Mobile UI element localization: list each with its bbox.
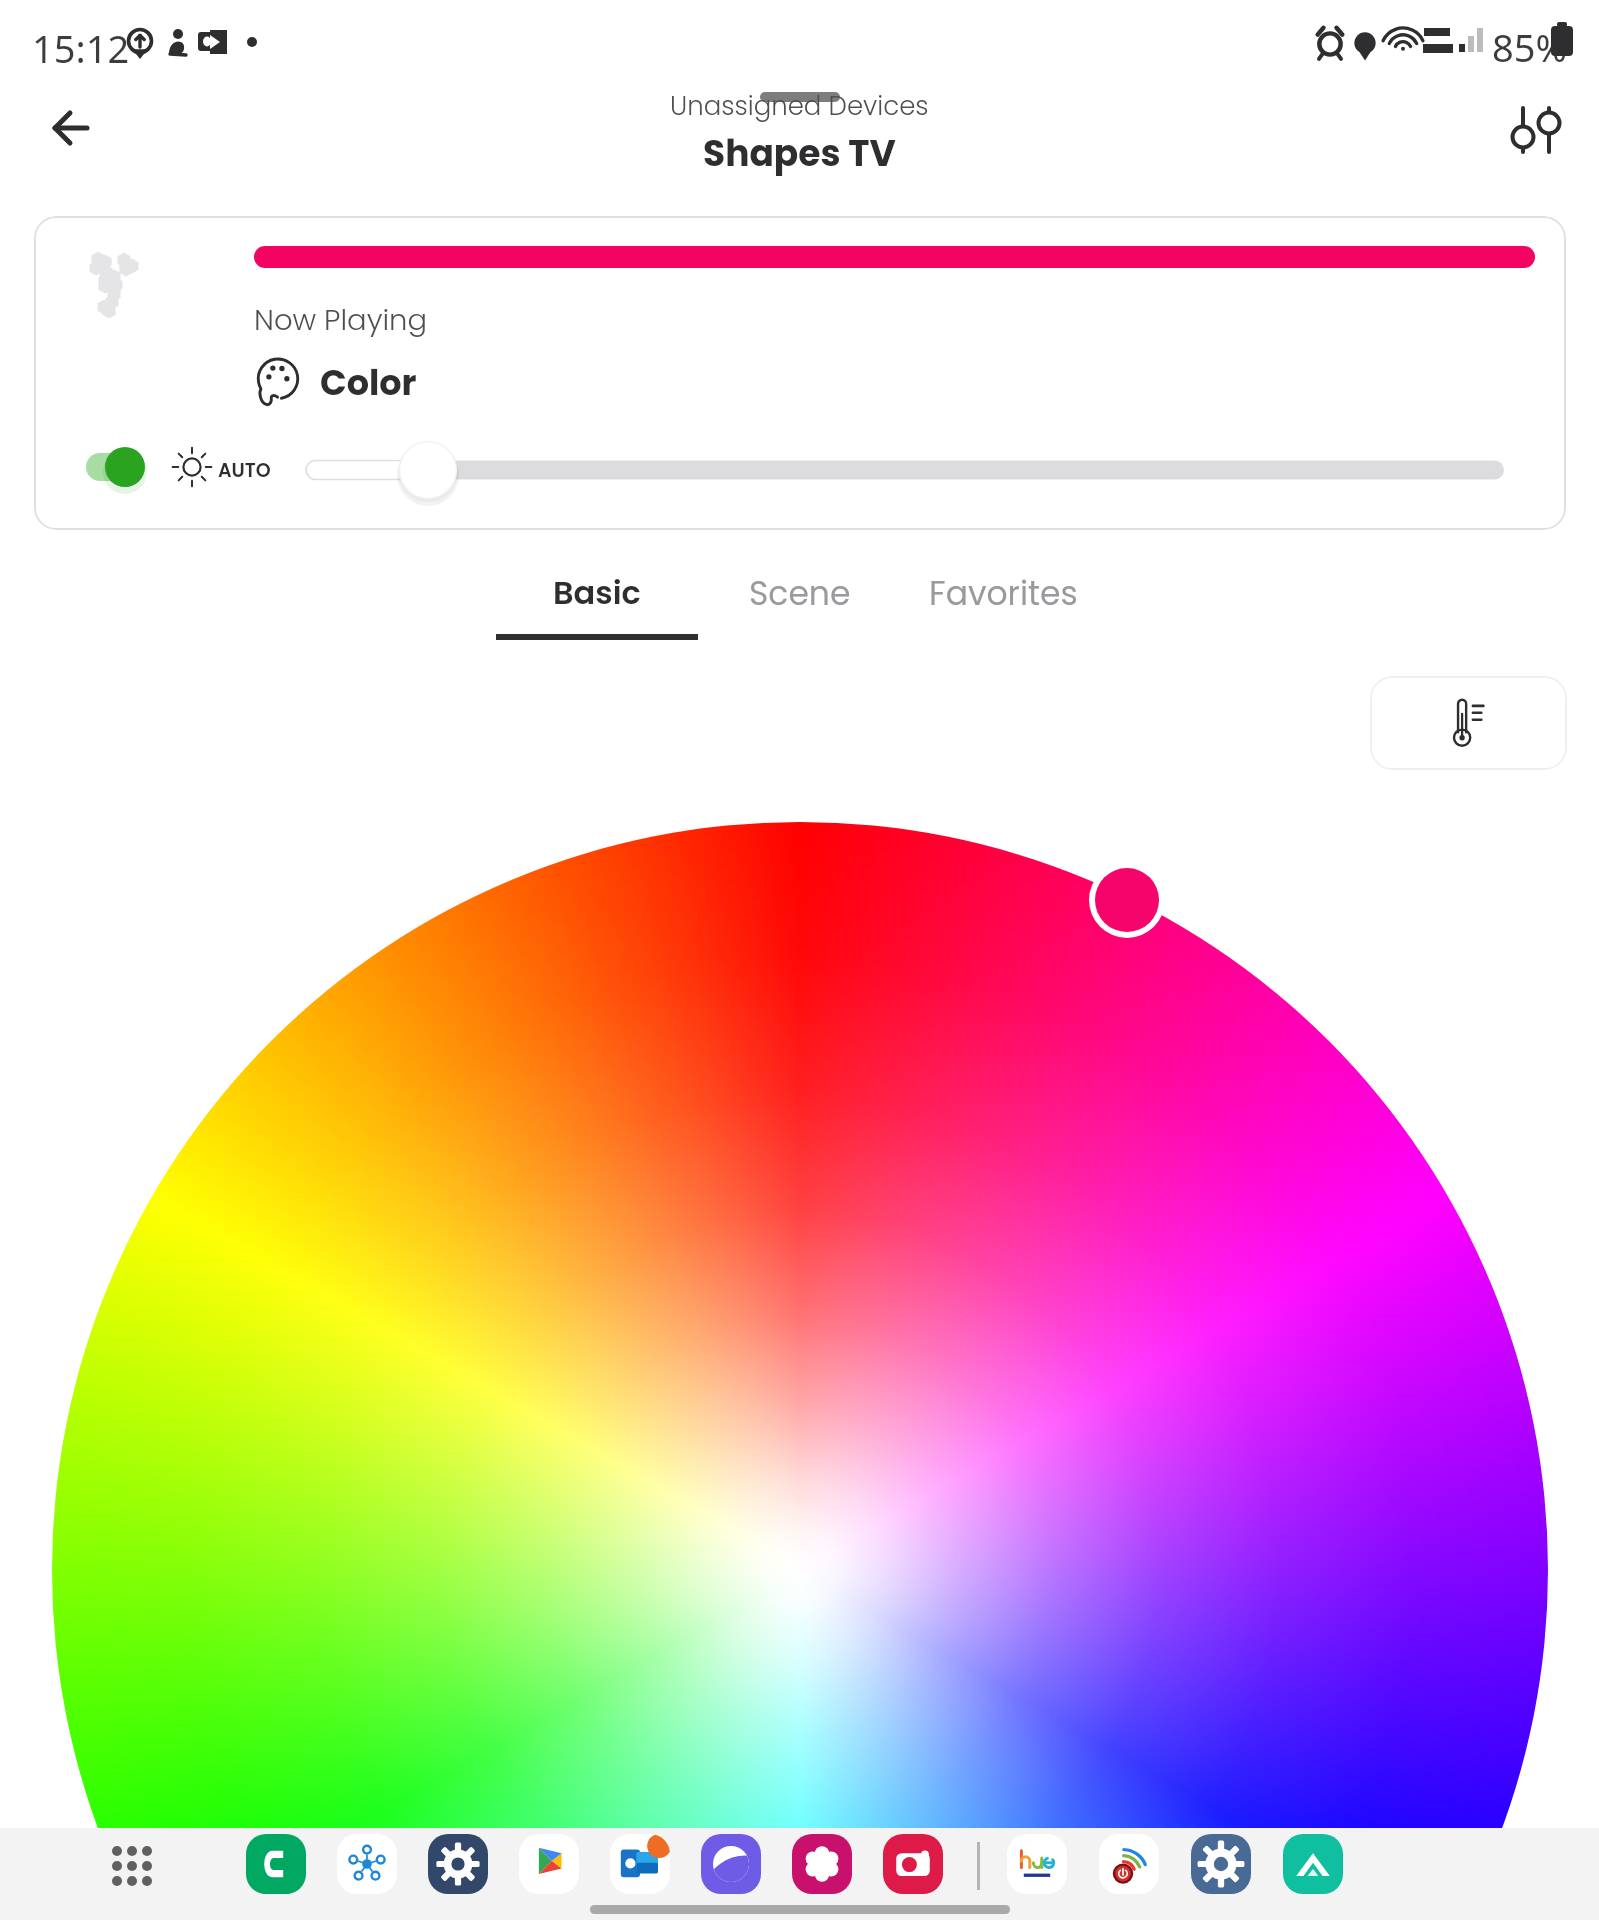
button[interactable]: Basic xyxy=(496,552,698,648)
button[interactable]: Back xyxy=(31,88,111,168)
button[interactable]: SmartThings xyxy=(337,1834,397,1894)
button[interactable]: Play Store xyxy=(519,1834,579,1894)
button[interactable]: Color temperature xyxy=(1370,676,1567,770)
button[interactable]: Now Playing xyxy=(34,216,1566,530)
button[interactable]: Smart Remote xyxy=(1099,1834,1159,1894)
button[interactable]: Device settings xyxy=(1505,99,1567,161)
staticText: 85% xyxy=(1492,21,1568,73)
staticText: Scene xyxy=(749,570,851,616)
staticText: Shapes TV xyxy=(703,128,896,178)
button[interactable]: Brightness xyxy=(296,427,1514,507)
button[interactable]: Gallery xyxy=(792,1834,852,1894)
staticText: Color xyxy=(320,358,417,407)
staticText: Now Playing xyxy=(254,300,428,341)
staticText: AUTO xyxy=(218,457,271,484)
button[interactable]: Internet xyxy=(701,1834,761,1894)
staticText: Basic xyxy=(553,570,641,615)
button[interactable]: Power xyxy=(84,437,160,497)
button[interactable]: Scene xyxy=(720,552,880,648)
button[interactable]: Philips Hue xyxy=(1007,1834,1067,1894)
button[interactable]: Camera xyxy=(883,1834,943,1894)
button[interactable]: Favorites xyxy=(896,552,1110,648)
staticText: Unassigned Devices xyxy=(670,88,929,124)
staticText: Favorites xyxy=(929,570,1078,616)
button[interactable]: Apps xyxy=(112,1842,154,1884)
button[interactable]: Phone xyxy=(246,1834,306,1894)
staticText: 15:12 xyxy=(32,22,130,74)
button[interactable]: SmartThings Home xyxy=(1283,1834,1343,1894)
button[interactable]: Nanoleaf xyxy=(1191,1834,1251,1894)
button[interactable]: Outlook xyxy=(610,1834,670,1894)
button[interactable]: Settings xyxy=(428,1834,488,1894)
button[interactable]: Color wheel xyxy=(0,0,1599,1920)
